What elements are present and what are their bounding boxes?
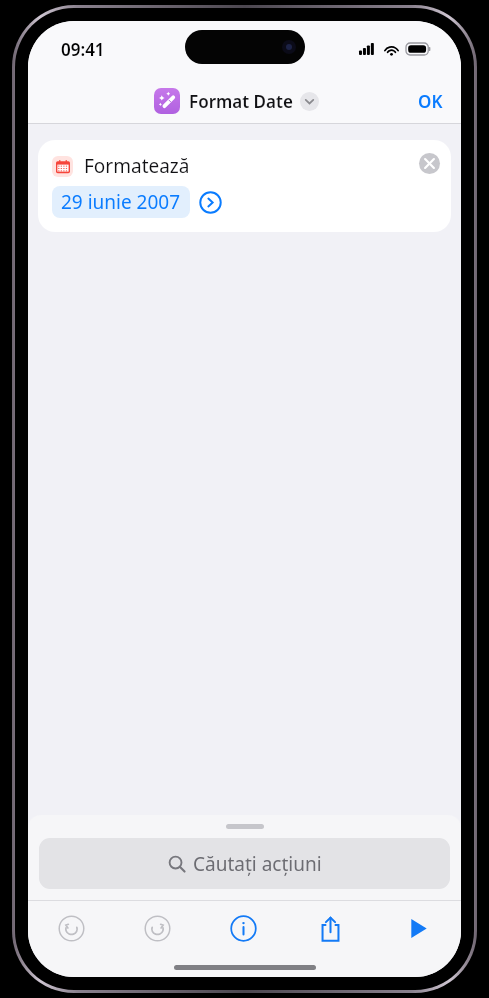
staticText: 09:41 [61, 38, 105, 61]
button[interactable]: Info [200, 901, 287, 955]
button[interactable]: Share [287, 901, 374, 955]
button[interactable]: Formatează [38, 140, 451, 232]
button[interactable]: Redo [114, 901, 200, 955]
staticText: OK [418, 90, 443, 113]
button[interactable]: OK [400, 82, 461, 121]
button[interactable]: Run [374, 901, 461, 955]
staticText: 29 iunie 2007 [61, 189, 181, 215]
button[interactable]: Format Date [154, 88, 319, 114]
staticText: Formatează [84, 153, 190, 179]
button[interactable]: Căutați acțiuni [39, 838, 450, 889]
staticText: Format Date [189, 90, 293, 113]
staticText: Căutați acțiuni [193, 851, 322, 877]
button[interactable]: Undo [28, 901, 114, 955]
button[interactable]: 29 iunie 2007 [52, 186, 190, 218]
button[interactable]: Open details [199, 191, 222, 214]
button[interactable]: Remove action [419, 153, 440, 174]
